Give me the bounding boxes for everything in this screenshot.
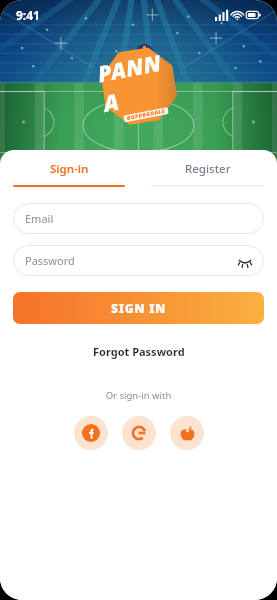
button[interactable]: Password: [13, 245, 264, 276]
staticText: Or sign-in with: [0, 389, 277, 402]
button[interactable]: SIGN IN: [13, 292, 264, 324]
staticText: Register: [185, 161, 231, 177]
staticText: Sign-in: [50, 161, 89, 177]
staticText: Password: [25, 253, 75, 268]
button[interactable]: Sign-in: [0, 150, 138, 187]
button[interactable]: Show password: [237, 253, 253, 269]
staticText: Forgot Password: [93, 344, 185, 359]
staticText: SIGN IN: [111, 300, 167, 316]
button[interactable]: Register: [138, 150, 277, 187]
staticText: Email: [25, 211, 54, 226]
button[interactable]: Forgot Password: [87, 342, 191, 361]
staticText: 9:41: [16, 7, 40, 23]
button[interactable]: Facebook: [74, 416, 108, 450]
staticText: PANNA: [95, 44, 183, 118]
button[interactable]: Apple: [170, 416, 204, 450]
staticText: GOFORGOALS: [126, 108, 166, 122]
button[interactable]: Email: [13, 203, 264, 234]
button[interactable]: Google: [122, 416, 156, 450]
